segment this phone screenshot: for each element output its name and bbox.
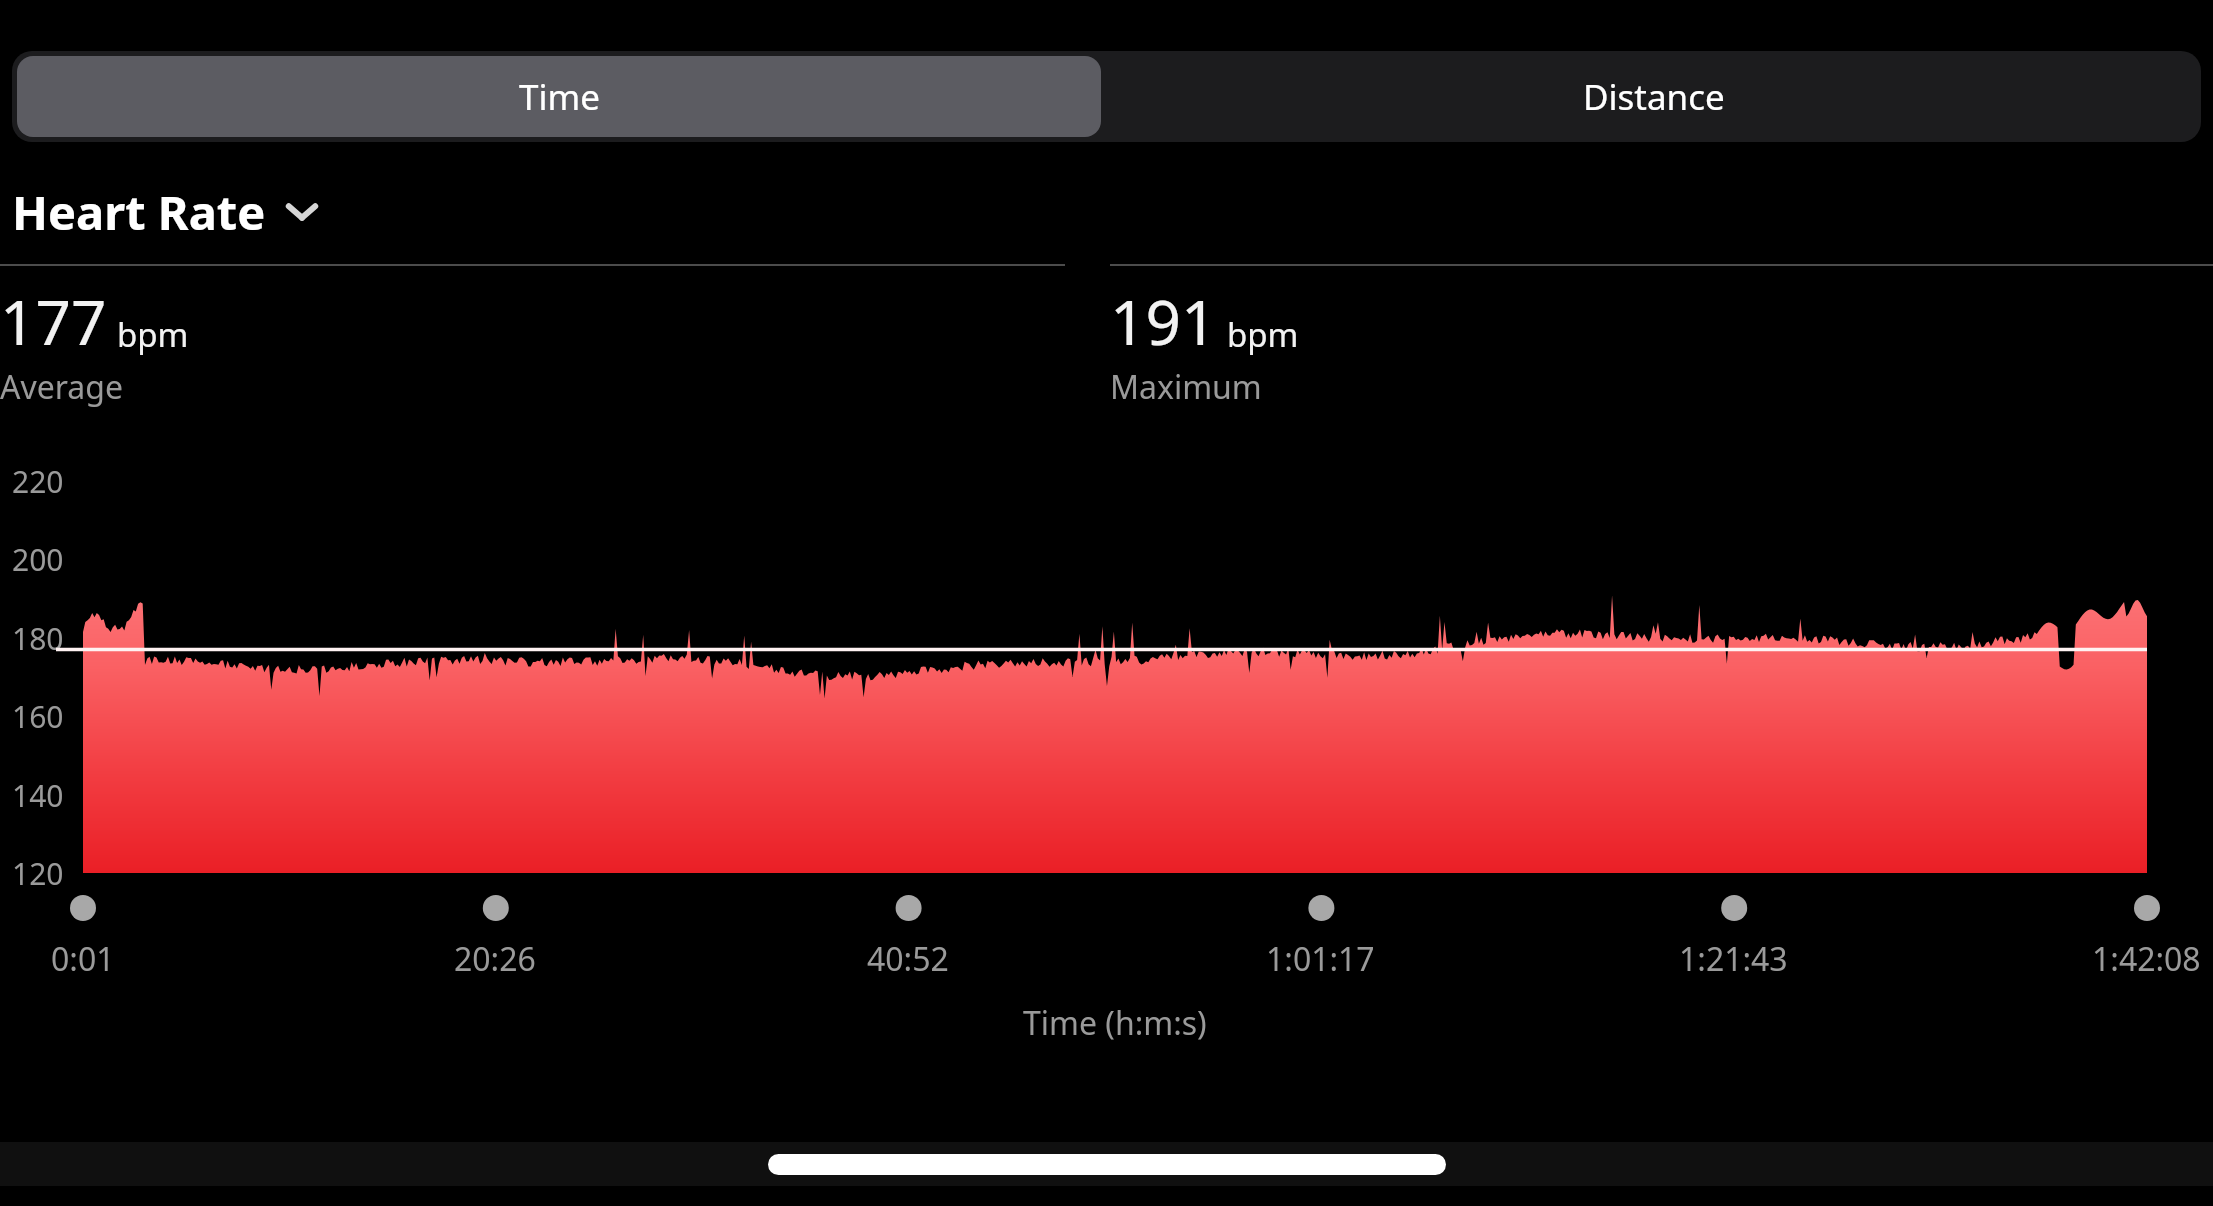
staticText: 40:52 bbox=[867, 937, 949, 981]
staticText: Maximum bbox=[1110, 365, 1262, 409]
staticText: 140 bbox=[12, 775, 64, 816]
staticText: 0:01 bbox=[51, 937, 115, 981]
staticText: 160 bbox=[12, 696, 64, 737]
staticText: 191 bbox=[1110, 279, 1217, 363]
staticText: 120 bbox=[12, 853, 64, 894]
staticText: Heart Rate bbox=[12, 180, 266, 244]
other: Change metric bbox=[280, 190, 324, 234]
staticText: 1:42:08 bbox=[2092, 937, 2201, 981]
staticText: 1:01:17 bbox=[1266, 937, 1375, 981]
staticText: bpm bbox=[117, 312, 189, 357]
staticText: Distance bbox=[1583, 73, 1725, 121]
staticText: Time (h:m:s) bbox=[1023, 1001, 1207, 1045]
button[interactable]: Home indicator bbox=[768, 1154, 1446, 1175]
staticText: 200 bbox=[12, 539, 64, 580]
staticText: 20:26 bbox=[454, 937, 536, 981]
button[interactable]: Distance bbox=[1106, 51, 2201, 142]
staticText: 177 bbox=[0, 279, 107, 363]
staticText: Time bbox=[519, 73, 600, 121]
button[interactable]: Time bbox=[17, 56, 1101, 137]
staticText: Average bbox=[0, 365, 124, 409]
staticText: bpm bbox=[1227, 312, 1299, 357]
staticText: 180 bbox=[12, 618, 64, 659]
staticText: 1:21:43 bbox=[1679, 937, 1788, 981]
staticText: 220 bbox=[12, 461, 64, 502]
button[interactable]: Heart Rate bbox=[12, 180, 324, 244]
